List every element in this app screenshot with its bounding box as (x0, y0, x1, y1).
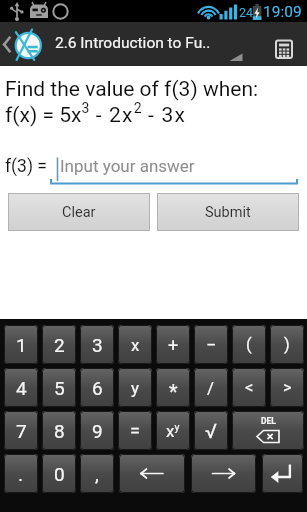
staticText: 19:09 (263, 3, 302, 21)
staticText: 5 (54, 377, 65, 399)
staticText: , (95, 463, 99, 485)
staticText: Clear (62, 204, 96, 221)
button[interactable]: , (80, 454, 114, 493)
button[interactable]: 9 (80, 411, 114, 450)
button[interactable]: − (194, 325, 228, 364)
staticText: 7 (16, 420, 27, 442)
staticText: < (245, 378, 254, 397)
staticText: xy (166, 421, 180, 441)
staticText: Input your answer (60, 156, 195, 176)
button[interactable]: = (118, 411, 152, 450)
button[interactable]: ) (270, 325, 304, 364)
staticText: √ (205, 419, 217, 442)
button[interactable]: 5 (42, 368, 76, 407)
button[interactable]: ( (232, 325, 266, 364)
button[interactable] (259, 22, 307, 66)
staticText: * (169, 380, 178, 403)
button[interactable]: 1 (4, 325, 38, 364)
button[interactable] (0, 22, 48, 66)
staticText: 2.6 Introduction to Fu.. (55, 34, 211, 52)
staticText: Submit (205, 204, 251, 221)
staticText: 3 (92, 334, 103, 356)
staticText: f(3) = (5, 156, 47, 177)
staticText: 6 (92, 377, 103, 399)
staticText: = (130, 420, 140, 441)
button[interactable]: y (118, 368, 152, 407)
button[interactable]: xy (156, 411, 190, 450)
staticText: / (207, 378, 215, 398)
staticText: DEL (261, 416, 276, 426)
staticText: 24 (239, 5, 254, 20)
staticText: f(x) = 5x3 - 2x2 - 3x (5, 100, 187, 127)
button[interactable] (119, 454, 185, 493)
button[interactable]: . (4, 454, 38, 493)
staticText: > (283, 378, 292, 397)
staticText: . (18, 463, 24, 485)
button[interactable]: √ (194, 411, 228, 450)
button[interactable]: x (118, 325, 152, 364)
staticText: − (206, 334, 217, 355)
button[interactable]: Input your answer (50, 152, 298, 184)
staticText: + (168, 334, 179, 355)
button[interactable]: < (232, 368, 266, 407)
button[interactable]: / (194, 368, 228, 407)
button[interactable] (191, 454, 256, 493)
button[interactable]: 3 (80, 325, 114, 364)
button[interactable]: > (270, 368, 304, 407)
button[interactable]: Clear (8, 193, 150, 231)
button[interactable]: + (156, 325, 190, 364)
button[interactable]: 2 (42, 325, 76, 364)
staticText: 9 (92, 420, 103, 442)
staticText: y (131, 378, 140, 398)
button[interactable]: * (156, 368, 190, 407)
staticText: ) (284, 335, 290, 354)
staticText: 8 (54, 420, 65, 442)
staticText: 4 (16, 377, 27, 399)
staticText: 2 (54, 334, 65, 356)
staticText: ( (246, 335, 252, 354)
button[interactable]: DEL (232, 411, 304, 450)
staticText: 0 (54, 463, 65, 485)
button[interactable]: 6 (80, 368, 114, 407)
button[interactable]: 4 (4, 368, 38, 407)
button[interactable] (262, 454, 303, 493)
staticText: 1 (16, 334, 27, 356)
button[interactable]: Submit (157, 193, 299, 231)
button[interactable]: 7 (4, 411, 38, 450)
button[interactable]: 8 (42, 411, 76, 450)
staticText: Find the value of f(3) when: (5, 77, 259, 102)
button[interactable] (48, 22, 250, 66)
button[interactable]: 0 (42, 454, 76, 493)
staticText: x (131, 335, 140, 355)
